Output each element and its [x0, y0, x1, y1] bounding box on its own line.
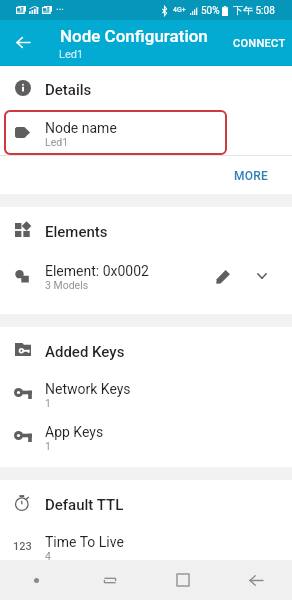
- button[interactable]: CONNECT: [227, 27, 292, 60]
- staticText: Elements: [45, 223, 108, 241]
- staticText: 123: [13, 540, 32, 553]
- staticText: 4G+: [173, 6, 186, 14]
- staticText: ...: [56, 1, 64, 13]
- staticText: Added Keys: [45, 343, 125, 361]
- staticText: 下午 5:08: [233, 4, 275, 17]
- staticText: Details: [45, 81, 92, 99]
- button[interactable]: 123: [0, 525, 292, 560]
- button[interactable]: Network Keys: [0, 372, 292, 415]
- staticText: Network Keys: [45, 381, 131, 397]
- staticText: 1: [45, 440, 51, 452]
- button[interactable]: App Keys: [0, 415, 292, 458]
- staticText: Default TTL: [45, 496, 124, 514]
- staticText: App Keys: [45, 424, 104, 440]
- button[interactable]: [4, 110, 227, 155]
- staticText: Element: 0x0002: [45, 263, 149, 279]
- button[interactable]: Menu: [0, 560, 73, 600]
- staticText: MORE: [234, 169, 268, 183]
- staticText: 4: [45, 550, 51, 560]
- staticText: Node name: [45, 120, 117, 136]
- staticText: CONNECT: [233, 37, 286, 50]
- staticText: 1: [45, 397, 51, 409]
- staticText: Led1: [45, 136, 69, 148]
- button[interactable]: MORE: [234, 162, 292, 188]
- button[interactable]: Home: [146, 560, 219, 600]
- staticText: 3 Models: [45, 279, 89, 291]
- button[interactable]: Expand: [244, 258, 280, 294]
- staticText: 50%: [201, 5, 220, 17]
- staticText: Time To Live: [45, 534, 124, 550]
- button[interactable]: Edit element: [205, 258, 241, 294]
- button[interactable]: Recent apps: [73, 560, 146, 600]
- staticText: Node Configuration: [60, 26, 208, 46]
- button[interactable]: Navigate up: [0, 20, 46, 66]
- button[interactable]: Element: 0x0002: [0, 252, 292, 300]
- button[interactable]: Back: [219, 560, 292, 600]
- staticText: Led1: [59, 48, 84, 61]
